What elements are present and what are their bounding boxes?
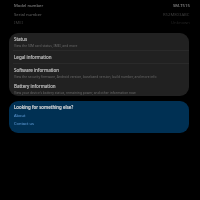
button[interactable]: IMEI [0,19,200,27]
staticText: R52M803ABC [163,12,190,18]
staticText: View your device's battery status, remai… [14,90,136,94]
button[interactable]: Status [9,33,189,50]
button[interactable]: Legal information [9,51,189,63]
staticText: Battery information [14,83,56,89]
staticText: SM-T515 [173,3,190,9]
button[interactable]: Model number [0,2,200,10]
staticText: Status [14,36,28,42]
staticText: View the SIM card status, IMEI, and more [14,43,78,47]
staticText: About [14,113,26,118]
staticText: Software information [14,67,59,73]
button[interactable]: Serial number [0,11,200,19]
button[interactable]: Contact us [14,121,189,126]
staticText: Serial number [14,12,42,18]
staticText: View the security firmware, Android vers… [14,74,157,78]
staticText: IMEI [14,20,23,26]
button[interactable]: Software information [9,64,189,81]
staticText: Looking for something else? [14,104,74,110]
staticText: Contact us [14,121,34,126]
staticText: Model number [14,3,44,9]
staticText: Legal information [14,54,52,60]
button[interactable]: About [14,113,189,118]
button[interactable]: Battery information [9,81,189,96]
staticText: Unknown [171,20,190,26]
